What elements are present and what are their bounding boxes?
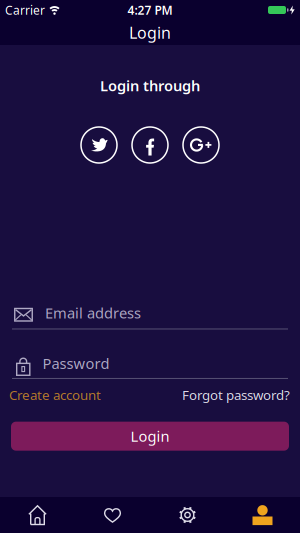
button[interactable]: Settings <box>150 497 225 533</box>
staticText: Forgot password? <box>182 386 290 404</box>
staticText: Create account <box>9 386 101 404</box>
button[interactable]: Login with Facebook <box>131 126 169 164</box>
button[interactable]: Login with Google <box>182 126 220 164</box>
staticText: Carrier <box>5 2 45 18</box>
staticText: Login <box>130 426 169 446</box>
button[interactable]: Login with Twitter <box>80 126 118 164</box>
staticText: 4:27 PM <box>127 2 172 18</box>
staticText: Password <box>42 353 109 373</box>
staticText: Email address <box>45 303 141 322</box>
staticText: Login through <box>100 76 200 95</box>
button[interactable]: Favorites <box>75 497 150 533</box>
button[interactable]: Profile <box>225 497 300 533</box>
button[interactable]: Login <box>11 422 289 451</box>
button[interactable]: Create account <box>9 386 101 404</box>
staticText: Login <box>129 22 171 43</box>
button[interactable]: Home <box>0 497 75 533</box>
button[interactable]: Forgot password? <box>182 386 290 404</box>
